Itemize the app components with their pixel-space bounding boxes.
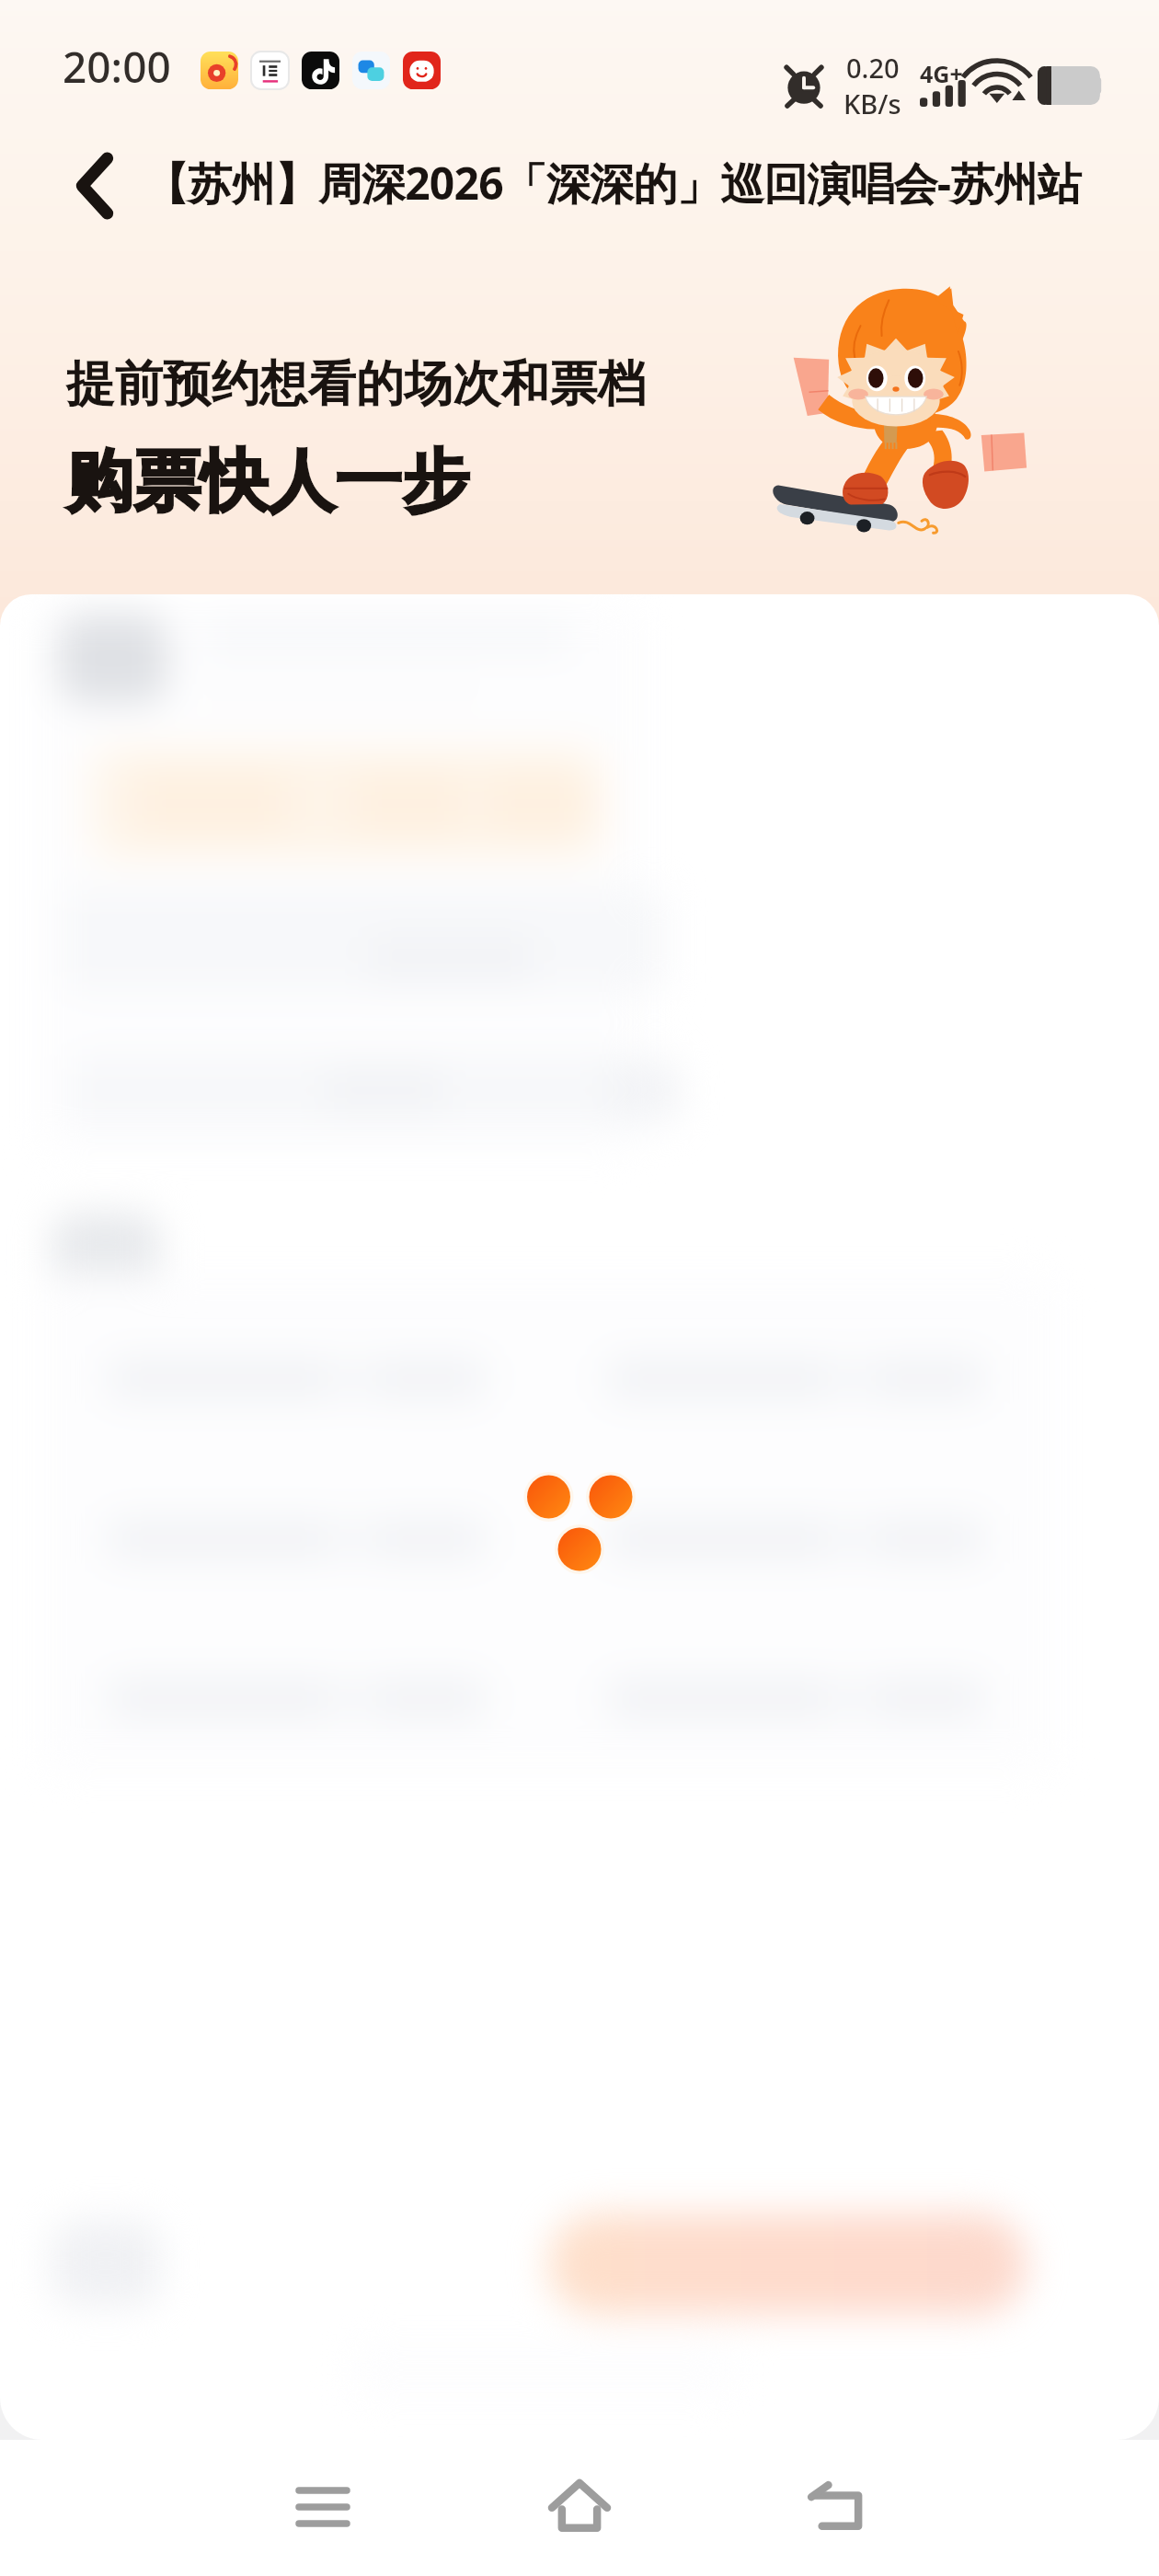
staticText: 购票快人一步 <box>66 440 469 524</box>
button[interactable]: Back <box>44 132 145 239</box>
button[interactable]: Home <box>523 2454 636 2557</box>
staticText: 4G+ <box>920 58 963 89</box>
staticText: 【苏州】周深2026「深深的」巡回演唱会-苏州站 <box>144 153 1081 213</box>
button[interactable]: Recent apps <box>267 2455 379 2559</box>
staticText: KB/s <box>843 86 901 121</box>
staticText: 20:00 <box>63 38 171 96</box>
staticText: 0.20 <box>846 50 900 86</box>
button[interactable]: Back <box>781 2455 893 2558</box>
staticText: 提前预约想看的场次和票档 <box>66 353 646 414</box>
